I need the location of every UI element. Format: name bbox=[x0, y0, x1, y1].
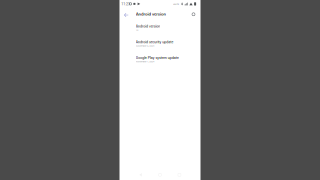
staticText: Android security update bbox=[136, 40, 286, 56]
button[interactable]: Android version bbox=[136, 23, 197, 36]
staticText: November 5, 2024 bbox=[136, 44, 210, 55]
staticText: 11:23 bbox=[121, 2, 156, 19]
staticText: Android version bbox=[136, 24, 234, 41]
button[interactable]: Google Play system update bbox=[136, 54, 197, 68]
staticText: VoLTE bbox=[173, 3, 197, 13]
staticText: Android version bbox=[136, 12, 257, 32]
button[interactable]: Android version bbox=[136, 9, 180, 19]
button[interactable]: Android security update bbox=[136, 39, 197, 52]
staticText: 15 bbox=[136, 28, 146, 40]
button[interactable]: Back bbox=[121, 10, 131, 20]
button[interactable]: Search bbox=[189, 10, 199, 20]
staticText: Google Play system update bbox=[136, 56, 308, 72]
staticText: November 1, 2024 bbox=[136, 60, 210, 71]
